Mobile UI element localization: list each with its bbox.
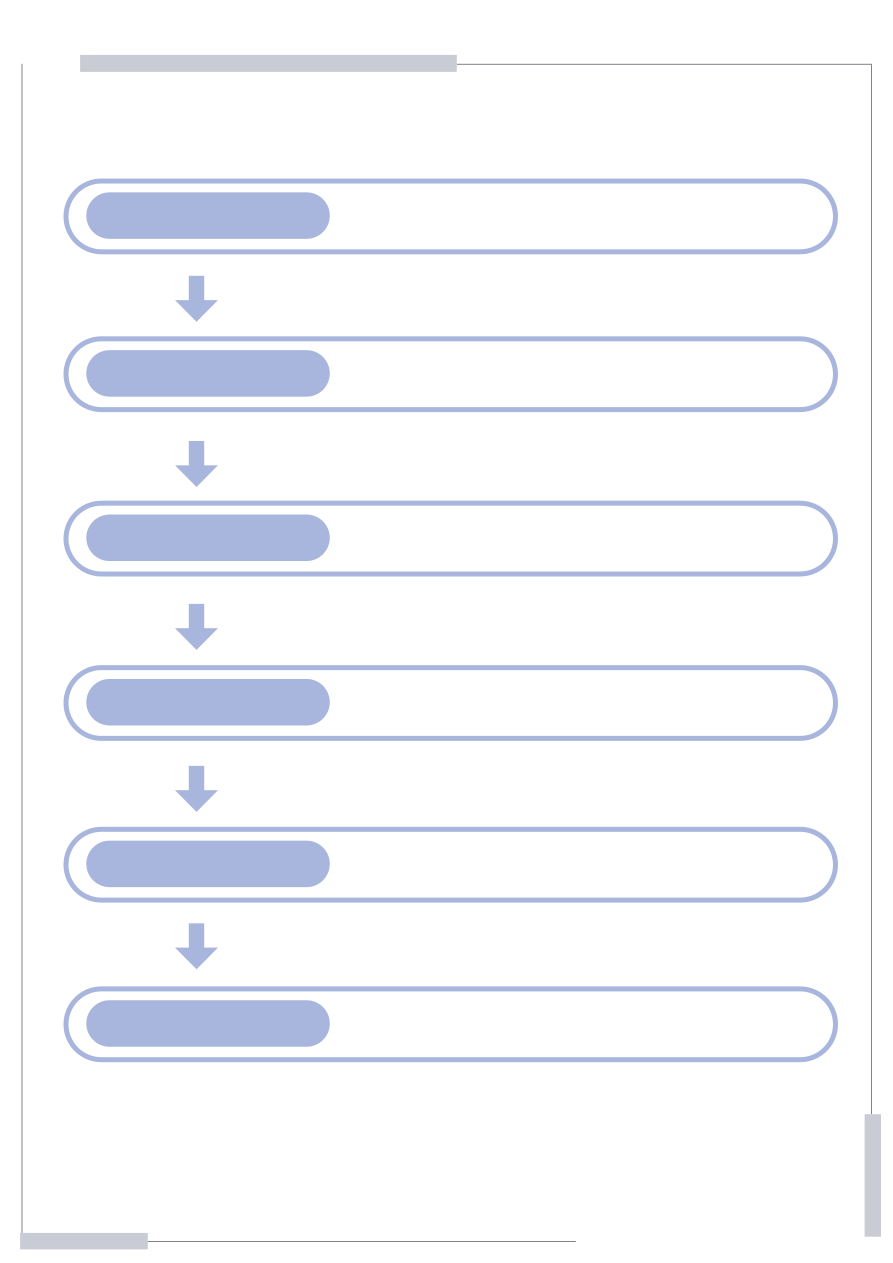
button[interactable]: Workflow step (66, 503, 835, 574)
button[interactable]: Workflow step (66, 181, 835, 252)
button[interactable]: Workflow step (66, 339, 835, 410)
button[interactable]: Workflow step (66, 829, 835, 900)
button[interactable]: Workflow step (66, 989, 835, 1060)
button[interactable]: Workflow step (66, 668, 835, 738)
